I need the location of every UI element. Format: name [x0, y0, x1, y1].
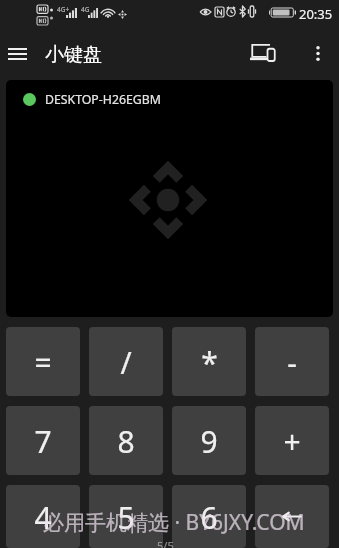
staticText: 5 [117, 497, 135, 538]
button[interactable]: 6 [172, 485, 246, 548]
button[interactable]: 4 [6, 485, 80, 548]
staticText: 4 [34, 497, 52, 538]
staticText: + [283, 421, 301, 462]
button[interactable]: Touchpad area [6, 80, 333, 317]
staticText: 6 [200, 497, 218, 538]
staticText: 5/5 [157, 538, 174, 548]
staticText: DESKTOP-H26EGBM [45, 91, 161, 108]
button[interactable]: * [172, 327, 246, 396]
button[interactable]: More options [296, 31, 339, 75]
staticText: = [34, 342, 52, 383]
staticText: 4G+ [57, 5, 70, 14]
staticText: 4G [81, 5, 90, 14]
button[interactable]: 5 [89, 485, 163, 548]
staticText: 8 [117, 421, 135, 462]
staticText: * [201, 342, 218, 383]
staticText: 9 [200, 421, 218, 462]
button[interactable]: + [255, 406, 329, 475]
button[interactable]: Navigation menu [0, 37, 34, 71]
button[interactable]: - [255, 327, 329, 396]
other: Backspace [282, 511, 302, 522]
button[interactable]: 9 [172, 406, 246, 475]
button[interactable]: = [6, 327, 80, 396]
button[interactable]: / [89, 327, 163, 396]
staticText: 20:35 [299, 5, 333, 23]
button[interactable]: 7 [6, 406, 80, 475]
staticText: / [120, 342, 132, 383]
staticText: 7 [34, 421, 52, 462]
button[interactable]: 8 [89, 406, 163, 475]
staticText: - [287, 342, 297, 383]
button[interactable]: Backspace [255, 485, 329, 548]
button[interactable]: Connected devices [240, 31, 284, 75]
staticText: 必用手机精选 · BY6JXY.COM [43, 508, 305, 537]
staticText: 小键盘 [45, 43, 102, 67]
